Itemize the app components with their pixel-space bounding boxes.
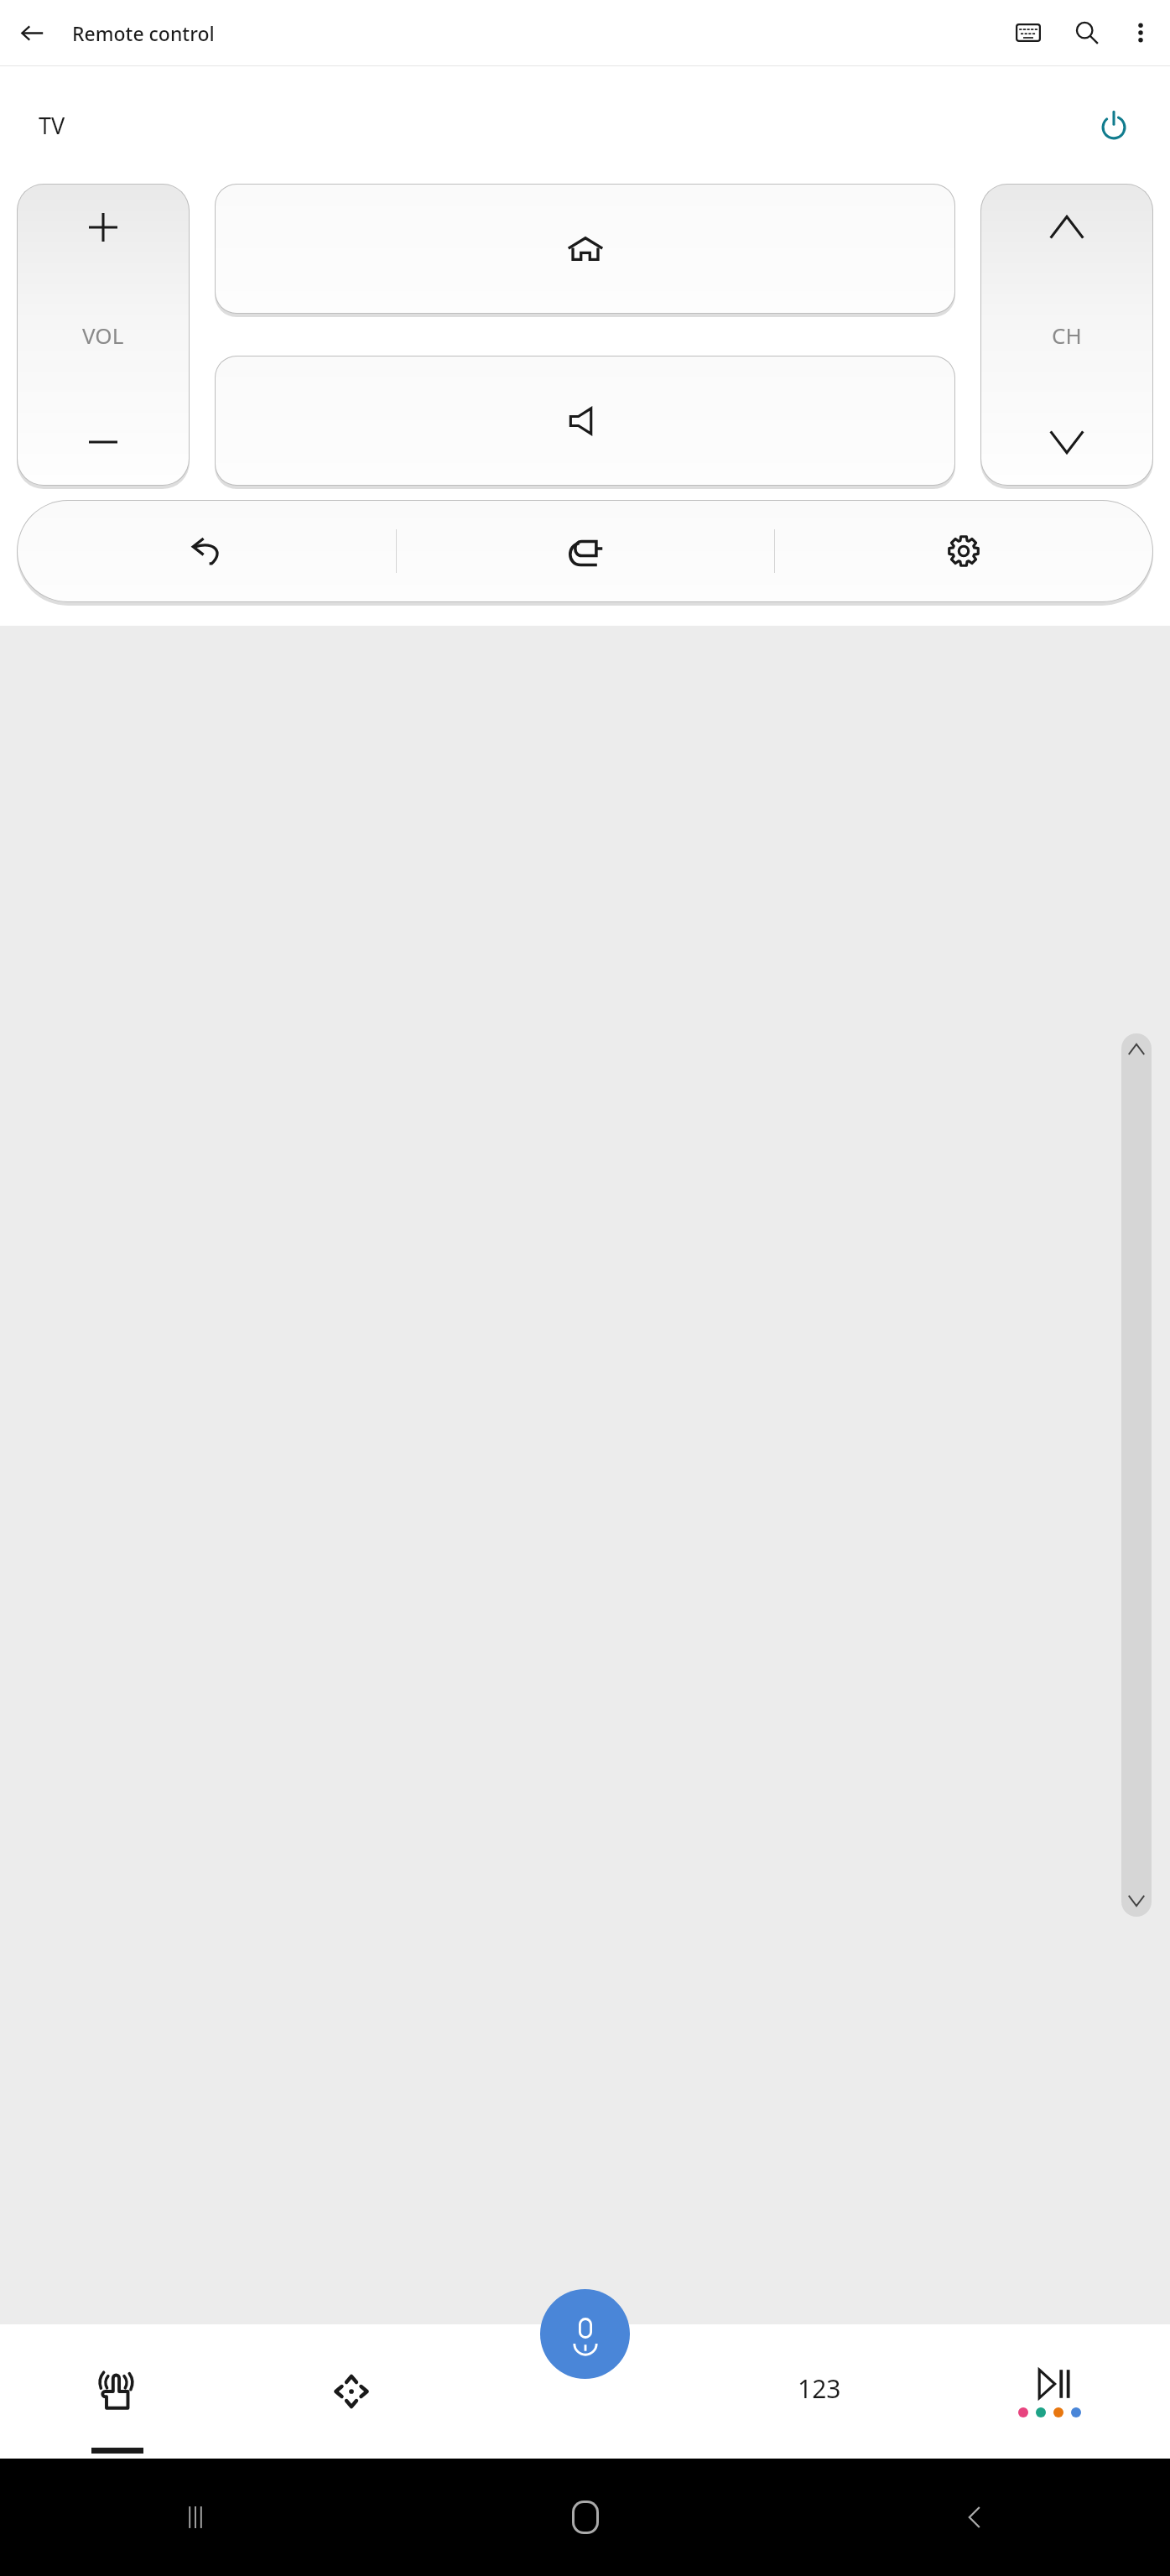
staticText: TV: [39, 110, 65, 141]
button[interactable]: Touchpad: [0, 2324, 234, 2459]
button[interactable]: Volume: [18, 185, 189, 485]
button[interactable]: Home: [390, 2459, 780, 2576]
button[interactable]: Keyboard: [1006, 10, 1051, 55]
button[interactable]: Settings: [775, 501, 1152, 601]
button[interactable]: Source: [397, 501, 774, 601]
button[interactable]: Back: [18, 501, 396, 601]
button[interactable]: Recents: [0, 2459, 390, 2576]
button[interactable]: Playback: [936, 2324, 1170, 2459]
button[interactable]: Touchpad: [0, 626, 1170, 2324]
button[interactable]: Mute: [216, 356, 954, 485]
staticText: 123: [798, 2371, 841, 2406]
button[interactable]: 123: [702, 2324, 936, 2459]
button[interactable]: Home: [216, 185, 954, 313]
button[interactable]: Back: [780, 2459, 1170, 2576]
staticText: CH: [1052, 320, 1082, 350]
staticText: VOL: [82, 320, 124, 350]
button[interactable]: Power: [1079, 91, 1148, 159]
button[interactable]: Channel: [981, 185, 1152, 485]
button[interactable]: Voice: [540, 2289, 630, 2379]
button[interactable]: Back: [8, 9, 55, 56]
button[interactable]: D-pad: [234, 2324, 468, 2459]
staticText: Remote control: [72, 20, 215, 46]
button[interactable]: More options: [1118, 10, 1163, 55]
button[interactable]: Search: [1064, 10, 1110, 55]
